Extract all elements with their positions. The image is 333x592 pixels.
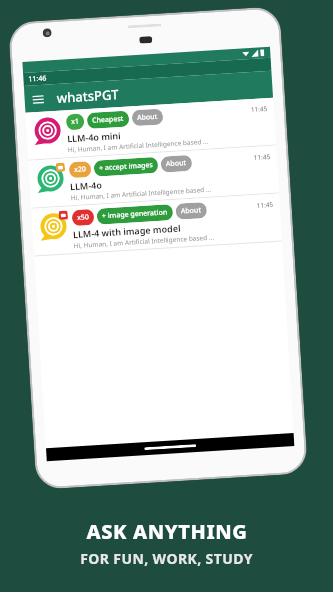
staticText: 11:45 [250,104,268,114]
button[interactable]: Menu [24,85,51,113]
button[interactable]: x1 [66,113,85,130]
staticText: About [137,112,158,123]
staticText: whatsPGT [56,85,120,107]
staticText: 11:45 [256,200,274,210]
button[interactable]: x20 [69,161,91,178]
staticText: Cheapest [92,114,124,126]
staticText: + accept images [99,160,153,173]
staticText: 11:45 [253,152,271,162]
staticText: x1 [71,117,79,127]
staticText: LLM-4o mini [67,129,121,144]
staticText: Hi, Human, I am Artificial Intelligence … [68,137,209,154]
staticText: ASK ANYTHING [86,518,248,545]
staticText: About [180,205,202,217]
staticText: LLM-4 with image model [73,222,181,240]
staticText: Hi, Human, I am Artificial Intelligence … [70,185,212,202]
staticText: FOR FUN, WORK, STUDY [80,549,253,568]
staticText: x20 [74,164,86,175]
button[interactable]: x50 [71,209,94,226]
staticText: 11:46 [28,73,47,85]
staticText: About [166,158,187,169]
button[interactable]: + image generation [96,204,173,225]
button[interactable]: About [160,155,192,173]
button[interactable]: x20 [28,146,279,209]
button[interactable]: x50 [31,193,282,257]
staticText: Hi, Human, I am Artificial Intelligence … [73,232,215,250]
button[interactable]: + accept images [94,157,158,177]
button[interactable]: x1 [25,98,276,161]
button[interactable]: About [131,108,163,126]
button[interactable]: Cheapest [87,110,129,129]
staticText: x50 [77,212,89,223]
button[interactable]: Home [144,444,196,450]
button[interactable]: About [175,202,207,220]
staticText: + image generation [102,207,168,221]
staticText: LLM-4o [70,178,102,192]
